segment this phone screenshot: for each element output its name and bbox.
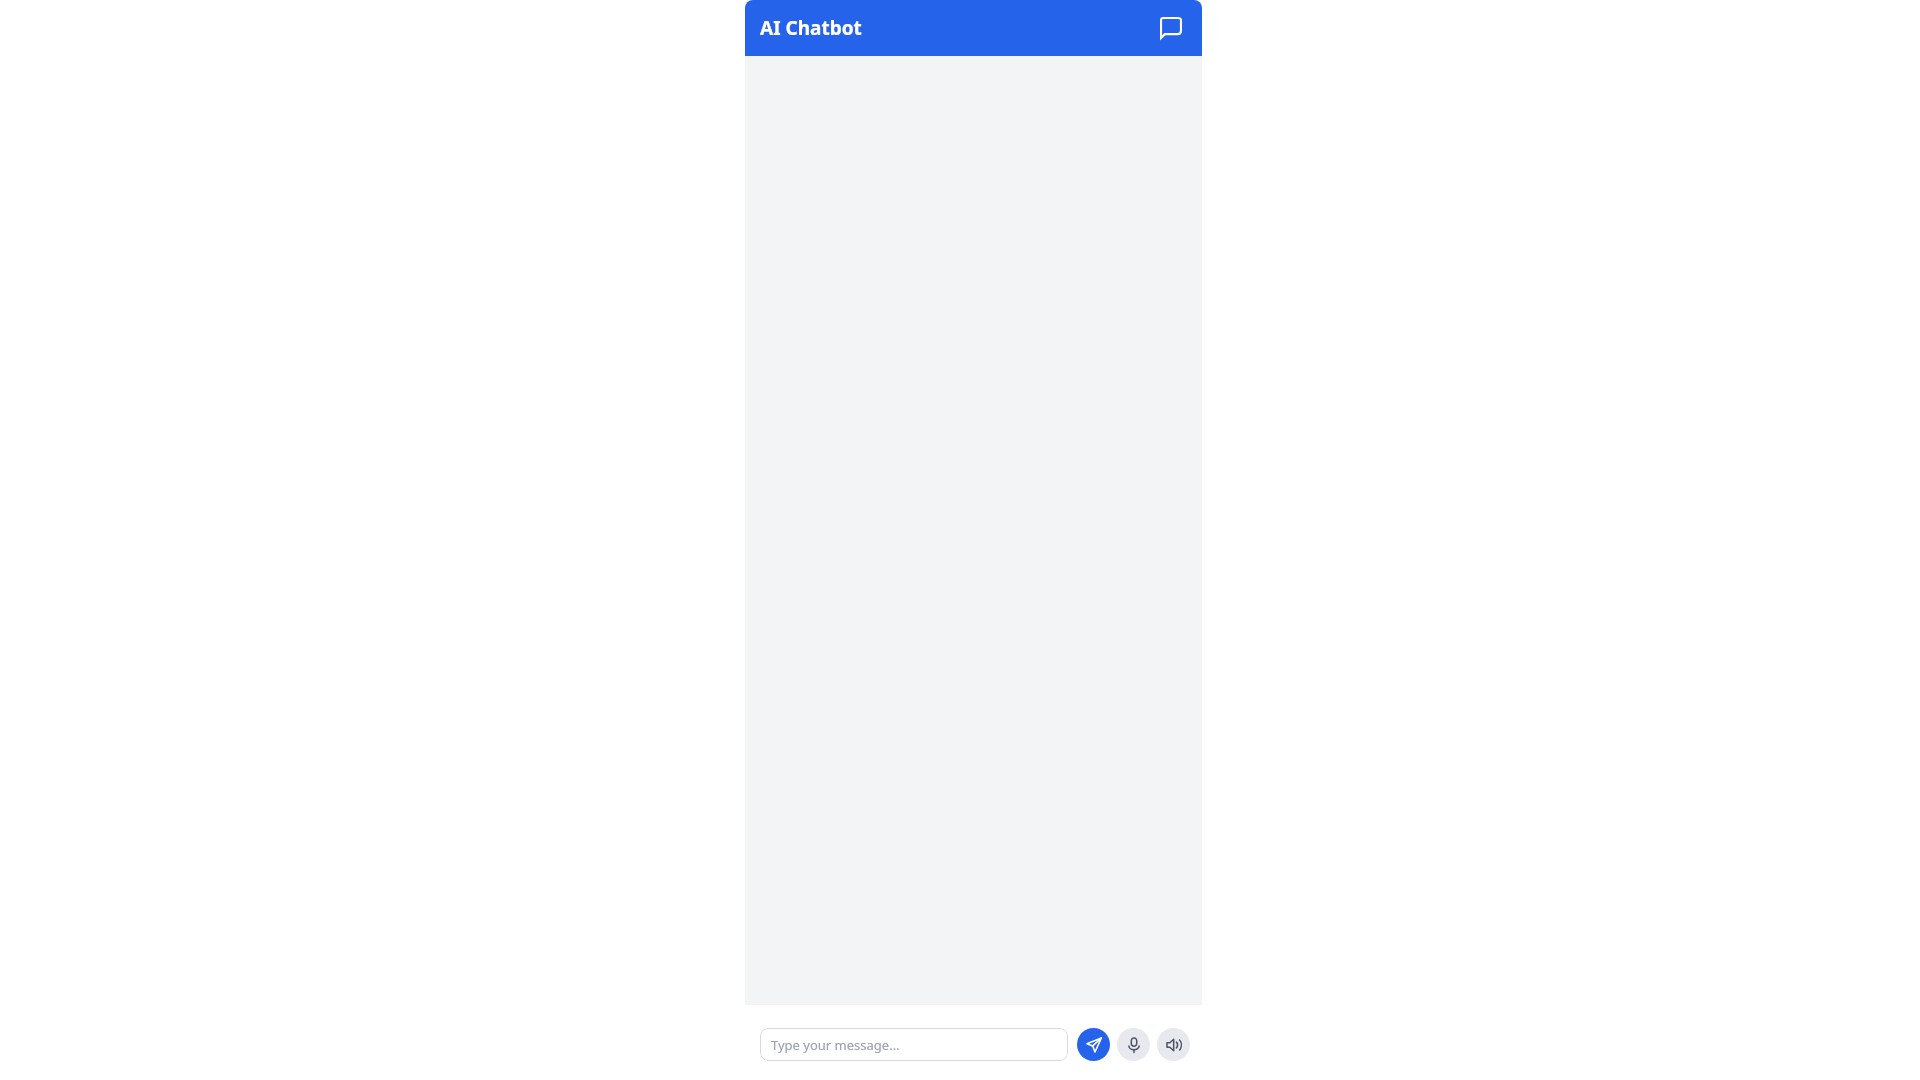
- staticText: AI Chatbot: [760, 15, 862, 41]
- button[interactable]: Voice input: [1117, 1028, 1150, 1061]
- button[interactable]: Send message: [1077, 1028, 1110, 1061]
- button[interactable]: Chat history: [1154, 11, 1188, 45]
- button[interactable]: Type your message...: [760, 1028, 1068, 1061]
- button[interactable]: Read aloud: [1157, 1028, 1190, 1061]
- staticText: Type your message...: [771, 1036, 900, 1054]
